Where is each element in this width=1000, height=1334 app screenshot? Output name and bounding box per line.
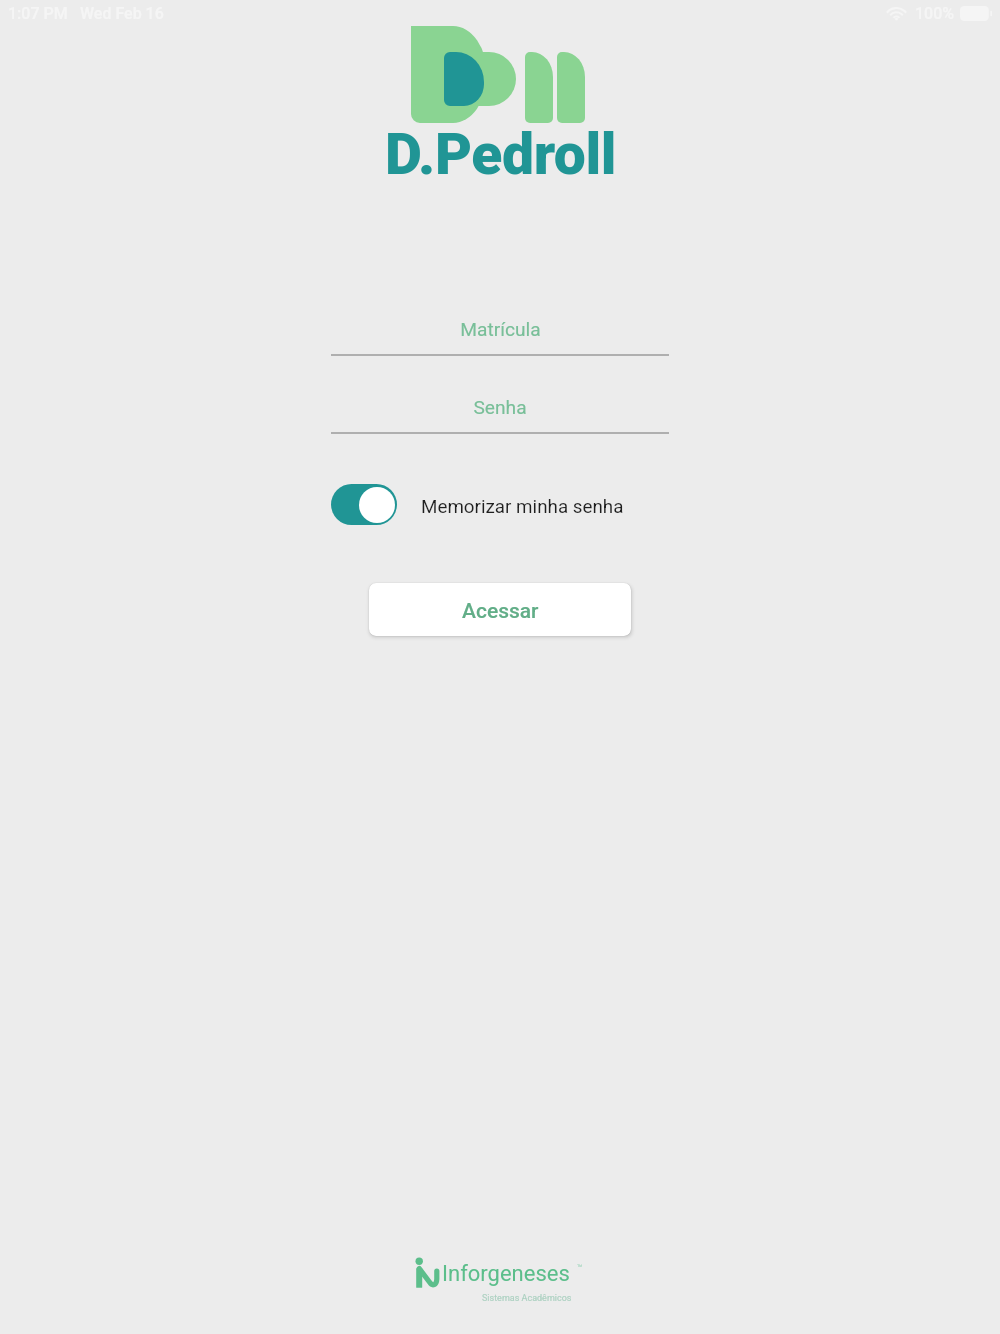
staticText: 1:07 PM (8, 4, 68, 23)
staticText: Senha (473, 396, 527, 419)
staticText: Inforgeneses (442, 1261, 570, 1287)
staticText: Sistemas Acadêmicos (482, 1293, 572, 1304)
staticText: Memorizar minha senha (421, 496, 624, 518)
button[interactable]: Matrícula (331, 318, 669, 356)
button[interactable]: Acessar (369, 583, 631, 636)
other: Memorizar minha senha (331, 484, 397, 525)
staticText: Matrícula (460, 318, 541, 341)
staticText: 100% (915, 4, 955, 23)
button[interactable]: Memorizar minha senha (331, 484, 624, 525)
staticText: D.Pedroll (385, 121, 616, 188)
staticText: ™ (577, 1263, 583, 1274)
staticText: Acessar (462, 599, 539, 624)
staticText: Wed Feb 16 (80, 4, 164, 23)
button[interactable]: Senha (331, 396, 669, 434)
